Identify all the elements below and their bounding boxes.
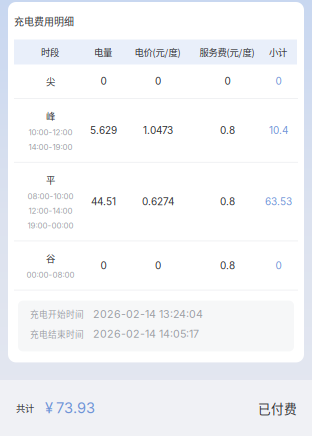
staticText: 12:00-14:00 [28,206,72,216]
staticText: 2026-02-14 14:05:17 [93,327,199,340]
staticText: 08:00-10:00 [27,191,73,201]
staticText: 小计 [269,45,287,59]
staticText: 充电开始时间 [30,308,84,320]
staticText: 峰 [46,109,55,122]
staticText: 0.8 [220,259,235,272]
staticText: 0 [100,259,106,272]
staticText: 0.8 [220,196,235,208]
staticText: 14:00-19:00 [28,142,72,152]
staticText: 0 [155,75,161,87]
staticText: 时段 [41,45,59,59]
staticText: 0 [155,259,161,272]
staticText: 10:00-12:00 [28,127,72,137]
staticText: 63.53 [265,196,292,208]
staticText: 0.8 [220,124,235,136]
staticText: 已付费 [258,399,297,417]
staticText: 19:00-00:00 [27,221,73,230]
staticText: 共计 [16,401,34,415]
staticText: 0 [100,75,106,87]
staticText: ¥ [45,399,53,417]
staticText: 服务费(元/度) [199,45,254,59]
staticText: 2026-02-14 13:24:04 [93,308,203,320]
staticText: 0 [275,259,281,272]
staticText: 00:00-08:00 [26,270,74,280]
staticText: 充电结束时间 [30,328,84,340]
staticText: 充电费用明细 [14,14,74,28]
staticText: 电价(元/度) [134,45,180,59]
staticText: 44.51 [91,196,116,208]
staticText: 0 [275,75,281,87]
staticText: 1.0473 [143,124,173,136]
staticText: 10.4 [269,124,288,136]
staticText: 电量 [94,45,112,59]
staticText: 73.93 [56,399,95,417]
staticText: 5.629 [90,124,117,136]
staticText: 尖 [46,74,55,88]
staticText: 0 [224,75,230,87]
button[interactable]: 已付费 [258,399,297,417]
staticText: 谷 [46,251,55,265]
staticText: 0.6274 [142,196,174,208]
staticText: 平 [46,173,55,186]
